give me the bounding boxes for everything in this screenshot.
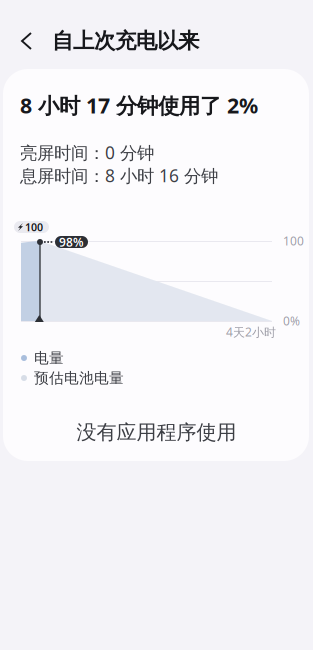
button[interactable]: 自上次充电以来 (0, 14, 313, 68)
staticText: 100 (25, 220, 43, 234)
staticText: 亮屏时间：0 分钟 (20, 141, 154, 164)
staticText: 4天2小时 (226, 324, 276, 340)
staticText: 电量 (34, 349, 64, 367)
staticText: 0% (283, 313, 300, 329)
staticText: 预估电池电量 (34, 369, 124, 387)
staticText: 没有应用程序使用 (76, 420, 236, 445)
staticText: 98% (59, 234, 84, 250)
staticText: 100 (283, 233, 304, 249)
staticText: 息屏时间：8 小时 16 分钟 (20, 164, 218, 187)
staticText: 8 小时 17 分钟使用了 2% (20, 91, 258, 119)
staticText: 自上次充电以来 (52, 28, 199, 54)
